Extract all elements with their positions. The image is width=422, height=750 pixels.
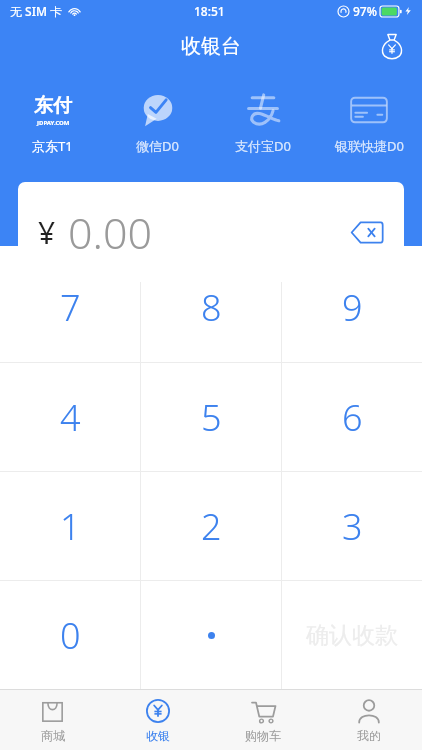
staticText: 8: [201, 283, 222, 332]
staticText: 商城: [41, 728, 65, 743]
staticText: 我的: [357, 728, 381, 743]
staticText: 0: [60, 611, 81, 660]
button[interactable]: [141, 581, 281, 689]
staticText: 5: [201, 393, 222, 442]
staticText: 确认收款: [306, 621, 398, 650]
staticText: 2: [201, 502, 222, 551]
staticText: 9: [342, 283, 363, 332]
button[interactable]: 购物车: [210, 690, 316, 750]
staticText: 无 SIM 卡: [10, 3, 63, 19]
staticText: 3: [342, 502, 363, 551]
button[interactable]: 商城: [0, 690, 105, 750]
staticText: 4: [60, 393, 81, 442]
staticText: 0.00: [68, 203, 153, 262]
button[interactable]: 微信D0: [105, 82, 210, 162]
button[interactable]: 8: [141, 253, 281, 362]
staticText: 微信D0: [136, 137, 179, 155]
button[interactable]: 支付宝D0: [210, 82, 316, 162]
staticText: 东付: [34, 94, 72, 118]
button[interactable]: ¥: [18, 182, 404, 282]
button[interactable]: 6: [282, 363, 422, 471]
staticText: 7: [60, 283, 81, 332]
staticText: 97%: [353, 3, 377, 19]
staticText: 1: [60, 502, 81, 551]
staticText: 收银台: [181, 34, 241, 59]
button[interactable]: 7: [0, 253, 140, 362]
button[interactable]: 我的: [316, 690, 422, 750]
button[interactable]: 收银: [105, 690, 210, 750]
staticText: 6: [342, 393, 363, 442]
staticText: 18:51: [194, 3, 225, 19]
staticText: 银联快捷D0: [335, 137, 404, 155]
button[interactable]: 2: [141, 472, 281, 580]
button[interactable]: 5: [141, 363, 281, 471]
button[interactable]: 1: [0, 472, 140, 580]
button[interactable]: 3: [282, 472, 422, 580]
button[interactable]: 确认收款: [282, 581, 422, 689]
button[interactable]: 东付: [0, 82, 105, 162]
button[interactable]: Backspace: [344, 209, 390, 255]
staticText: 京东T1: [32, 137, 73, 155]
button[interactable]: 9: [282, 253, 422, 362]
staticText: 支付宝D0: [235, 137, 291, 155]
button[interactable]: 4: [0, 363, 140, 471]
button[interactable]: 0: [0, 581, 140, 689]
staticText: JDPAY.COM: [37, 119, 70, 127]
staticText: ¥: [38, 212, 56, 253]
button[interactable]: Wallet: [372, 26, 412, 66]
staticText: 收银: [146, 728, 170, 743]
button[interactable]: 银联快捷D0: [316, 82, 422, 162]
staticText: 购物车: [245, 728, 281, 743]
